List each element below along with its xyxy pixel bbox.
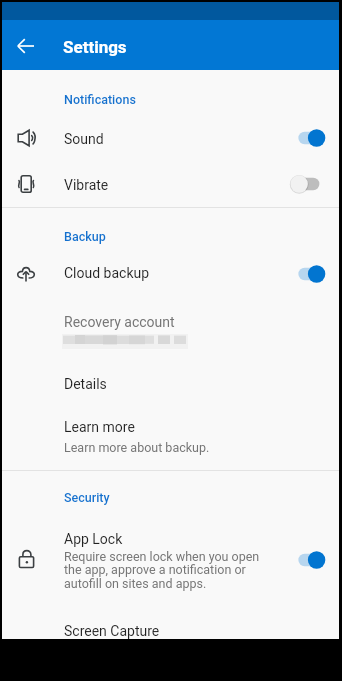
button[interactable]: Screen Capture — [2, 613, 339, 639]
button[interactable]: Details — [2, 364, 339, 394]
other: App Lock — [17, 548, 39, 570]
other: Vibrate — [17, 173, 39, 195]
staticText: Cloud backup — [64, 265, 150, 281]
staticText: Recovery account — [64, 314, 175, 330]
other: Cloud backup — [17, 264, 39, 286]
button[interactable]: Vibrate switch — [288, 172, 330, 196]
button[interactable]: App Lock switch — [288, 548, 330, 572]
button[interactable]: Cloud backup — [2, 251, 339, 297]
staticText: App Lock — [64, 531, 123, 547]
other: Sound — [17, 127, 39, 149]
button[interactable]: Learn more — [2, 407, 339, 459]
button[interactable]: Sound switch — [288, 126, 330, 150]
button[interactable]: Navigate up — [15, 35, 37, 57]
staticText: Require screen lock when you open the ap… — [64, 549, 264, 591]
staticText: Security — [64, 490, 110, 505]
staticText: Screen Capture — [64, 623, 160, 639]
staticText: Settings — [63, 37, 127, 57]
staticText: Notifications — [64, 92, 136, 107]
button[interactable]: Vibrate — [2, 163, 339, 207]
staticText: Backup — [64, 229, 106, 244]
button[interactable]: App Lock — [2, 520, 339, 613]
staticText: Details — [64, 376, 107, 392]
staticText: Learn more about backup. — [64, 440, 210, 455]
button[interactable]: Sound — [2, 117, 339, 163]
staticText: Sound — [64, 131, 104, 147]
staticText: Vibrate — [64, 177, 109, 193]
staticText: Learn more — [64, 419, 135, 435]
button[interactable]: Cloud backup switch — [288, 262, 330, 286]
